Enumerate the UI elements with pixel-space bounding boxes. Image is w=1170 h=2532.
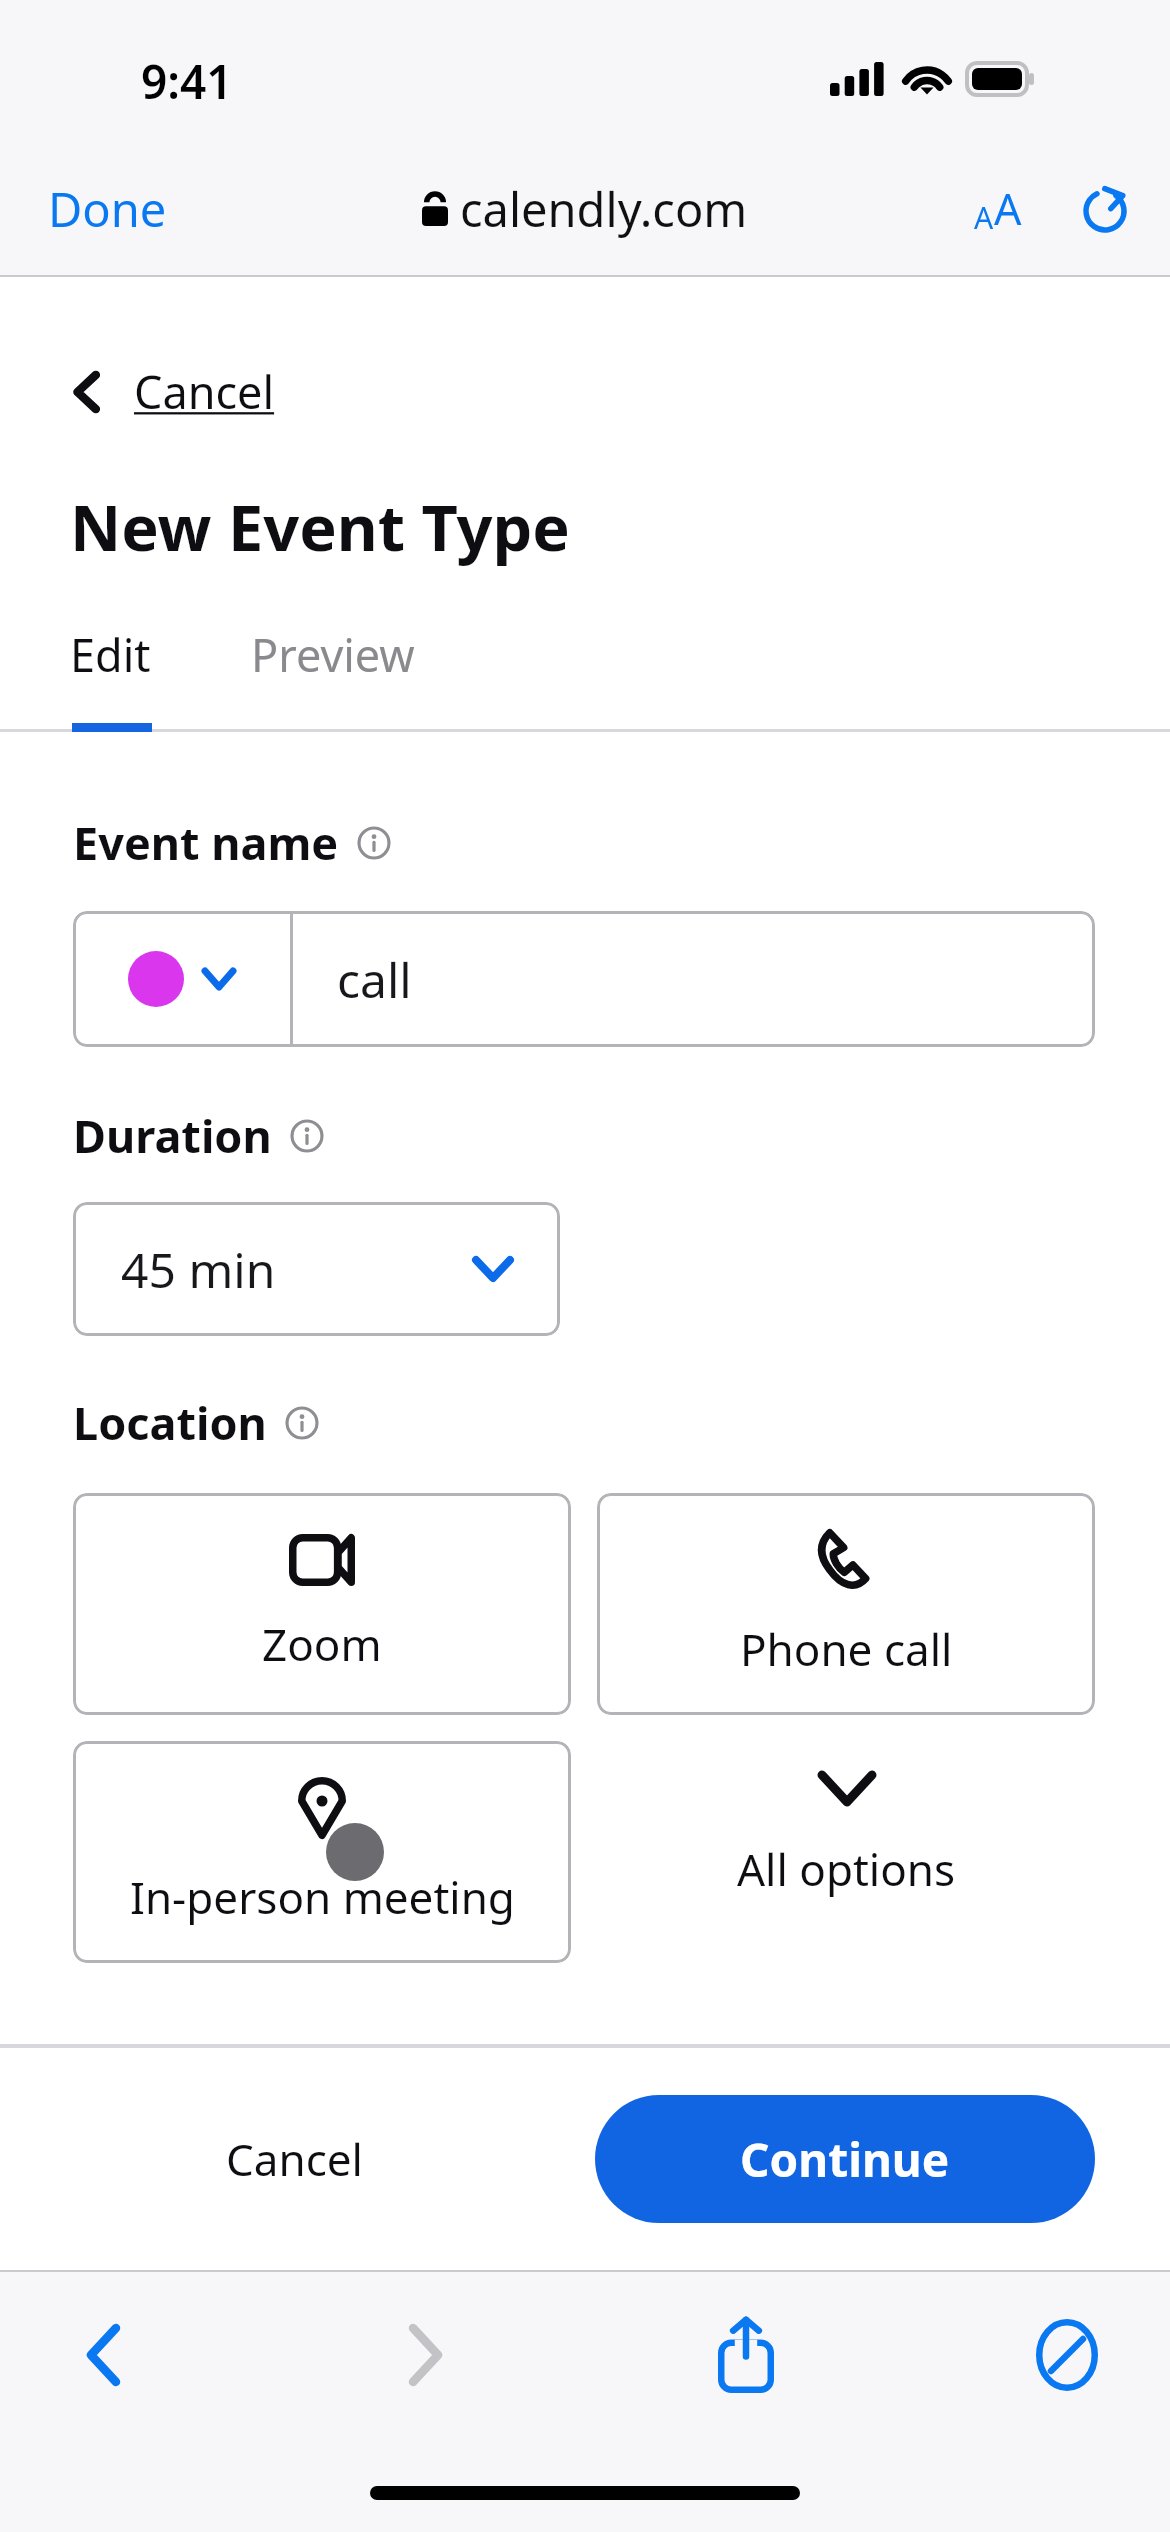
button[interactable]: Continue — [595, 2095, 1095, 2223]
staticText: Preview — [251, 624, 415, 685]
staticText: Zoom — [262, 1614, 382, 1674]
button[interactable]: Preview — [251, 624, 425, 699]
button[interactable]: call — [293, 911, 1095, 1047]
button[interactable]: All options — [697, 1741, 996, 1929]
staticText: In-person meeting — [130, 1867, 515, 1927]
staticText: Cancel — [134, 361, 275, 422]
button[interactable]: Cancel — [70, 355, 291, 428]
button[interactable]: Back — [48, 2300, 158, 2410]
button[interactable]: More info about Location — [285, 1406, 319, 1440]
staticText: Event name — [73, 812, 339, 873]
staticText: Location — [73, 1392, 267, 1453]
button[interactable]: 45 min — [73, 1202, 560, 1336]
staticText: A — [974, 197, 994, 238]
staticText: Cancel — [226, 2129, 363, 2189]
button[interactable]: Zoom — [73, 1493, 571, 1715]
staticText: Done — [48, 177, 167, 241]
button[interactable]: Share — [691, 2300, 801, 2410]
staticText: Edit — [70, 624, 151, 685]
button[interactable]: In-person meeting — [73, 1741, 571, 1963]
button[interactable]: Reload — [1074, 178, 1136, 240]
staticText: Duration — [73, 1105, 272, 1166]
button[interactable]: Edit — [70, 624, 161, 699]
button[interactable]: Text size — [964, 167, 1032, 250]
button[interactable]: Tabs — [1012, 2300, 1122, 2410]
staticText: 45 min — [121, 1237, 276, 1302]
staticText: Phone call — [740, 1619, 953, 1679]
button[interactable]: Forward — [370, 2300, 480, 2410]
staticText: New Event Type — [70, 484, 570, 570]
staticText: All options — [737, 1839, 956, 1899]
staticText: calendly.com — [460, 177, 748, 241]
button[interactable]: Cancel — [200, 2109, 389, 2209]
button[interactable]: Choose colour — [73, 911, 290, 1047]
staticText: call — [337, 947, 412, 1012]
button[interactable]: More info about Event name — [357, 826, 391, 860]
staticText: Continue — [740, 2128, 950, 2191]
button[interactable]: Phone call — [597, 1493, 1095, 1715]
button[interactable]: Done — [28, 163, 187, 255]
staticText: A — [994, 179, 1022, 238]
button[interactable]: More info about Duration — [290, 1119, 324, 1153]
staticText: 9:41 — [141, 50, 233, 113]
